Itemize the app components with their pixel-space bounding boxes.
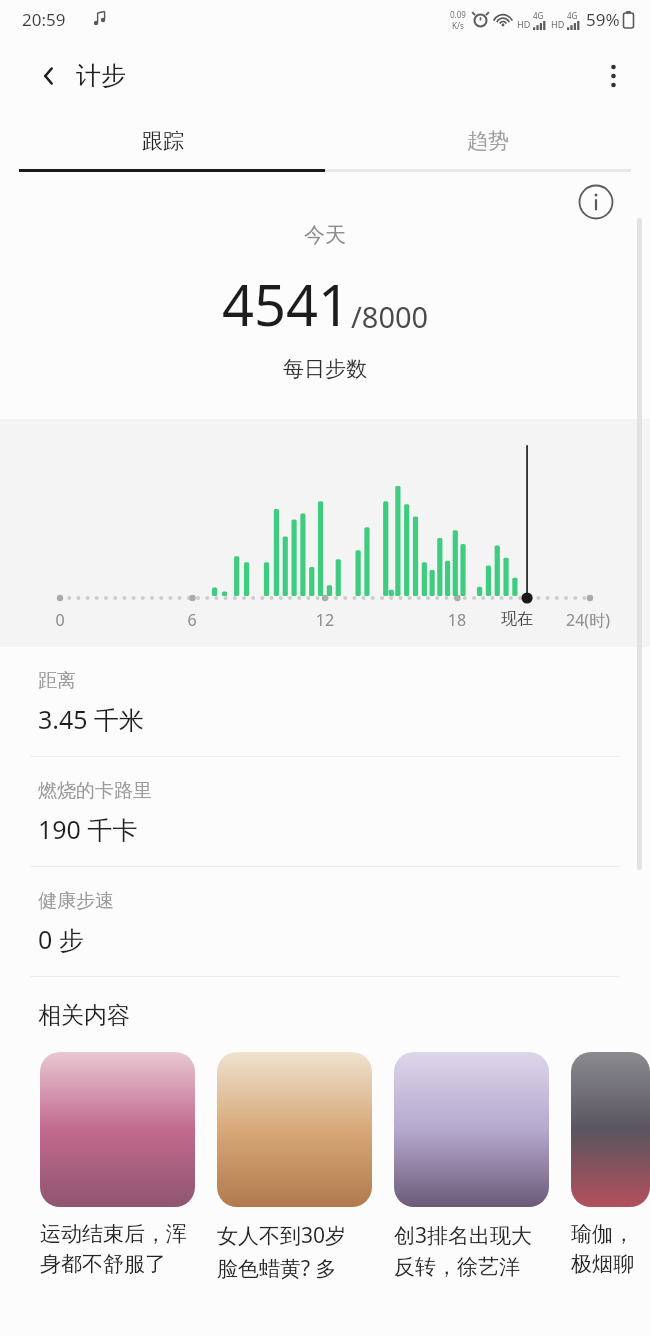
staticText: HD (517, 18, 531, 30)
staticText: 0.09 (450, 9, 466, 20)
staticText: 4G (533, 10, 544, 21)
staticText: 距离 (38, 669, 76, 693)
button[interactable]: 创3排名出现大 (394, 1052, 549, 1280)
other: Back (38, 65, 60, 87)
staticText: 3.45 千米 (38, 702, 145, 736)
staticText: 4G (567, 10, 578, 21)
button[interactable]: Information (578, 184, 614, 220)
staticText: 今天 (304, 222, 346, 248)
staticText: 相关内容 (38, 1001, 130, 1030)
staticText: 12 (303, 609, 347, 631)
staticText: HD (551, 18, 565, 30)
staticText: 健康步速 (38, 889, 114, 913)
staticText: 女人不到30岁 (217, 1221, 347, 1250)
staticText: 脸色蜡黄? 多 (217, 1254, 337, 1283)
staticText: 190 千卡 (38, 812, 138, 846)
staticText: 现在 (495, 609, 539, 629)
staticText: 反转，徐艺洋 (394, 1254, 520, 1280)
staticText: 趋势 (467, 128, 509, 154)
staticText: 每日步数 (283, 356, 367, 382)
staticText: 燃烧的卡路里 (38, 779, 152, 803)
button[interactable]: More options (597, 50, 630, 102)
staticText: 计步 (76, 60, 126, 91)
staticText: 创3排名出现大 (394, 1221, 533, 1250)
button[interactable]: 健康步速 (0, 867, 650, 976)
staticText: /8000 (351, 297, 429, 336)
button[interactable]: 趋势 (325, 113, 650, 169)
button[interactable]: 运动结束后，浑 (40, 1052, 195, 1277)
staticText: 20:59 (22, 8, 66, 31)
staticText: 24(时) (566, 609, 610, 631)
staticText: 身都不舒服了 (40, 1251, 166, 1277)
staticText: 瑜伽，每 (571, 1221, 650, 1247)
button[interactable]: 跟踪 (0, 113, 325, 169)
staticText: 59% (586, 8, 620, 31)
button[interactable]: 距离 (0, 647, 650, 756)
staticText: 4541 (222, 266, 351, 342)
button[interactable]: 瑜伽，每 (571, 1052, 650, 1277)
staticText: 极烟聊时 (571, 1251, 650, 1277)
staticText: 0 (38, 609, 82, 631)
staticText: 跟踪 (142, 128, 184, 154)
button[interactable]: 燃烧的卡路里 (0, 757, 650, 866)
staticText: 18 (435, 609, 479, 631)
button[interactable]: Back (30, 52, 134, 99)
staticText: 运动结束后，浑 (40, 1221, 187, 1247)
staticText: 0 步 (38, 922, 84, 956)
staticText: K/s (452, 20, 464, 31)
button[interactable]: 女人不到30岁 (217, 1052, 372, 1283)
staticText: 6 (170, 609, 214, 631)
